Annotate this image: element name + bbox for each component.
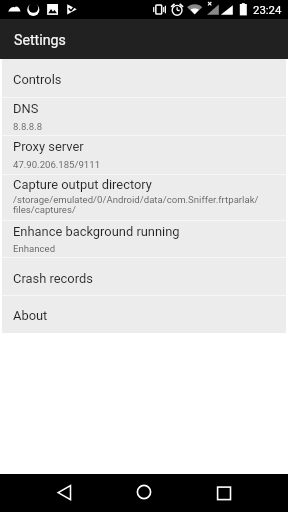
button[interactable]: Controls xyxy=(2,59,286,97)
button[interactable]: Proxy server xyxy=(2,136,286,174)
button[interactable]: Enhance background running xyxy=(2,221,286,257)
staticText: Enhanced xyxy=(13,243,263,254)
button[interactable]: DNS xyxy=(2,98,286,135)
staticText: Enhance background running xyxy=(13,224,180,239)
button[interactable]: Recent apps xyxy=(204,474,244,512)
staticText: /storage/emulated/0/Android/data/com.Sni… xyxy=(13,194,263,215)
button[interactable]: Home xyxy=(124,474,164,512)
staticText: Settings xyxy=(14,32,66,49)
staticText: 8.8.8.8 xyxy=(13,121,263,132)
staticText: Crash records xyxy=(13,271,93,286)
staticText: DNS xyxy=(13,101,39,116)
staticText: Capture output directory xyxy=(13,177,152,192)
staticText: Controls xyxy=(13,72,62,87)
button[interactable]: Back xyxy=(44,474,84,512)
button[interactable]: Capture output directory xyxy=(2,175,286,220)
staticText: Proxy server xyxy=(13,139,84,154)
button[interactable]: About xyxy=(2,296,286,333)
staticText: 23:24 xyxy=(253,3,282,16)
staticText: About xyxy=(13,308,48,323)
button[interactable]: Crash records xyxy=(2,258,286,295)
staticText: 47.90.206.185/9111 xyxy=(13,159,263,170)
